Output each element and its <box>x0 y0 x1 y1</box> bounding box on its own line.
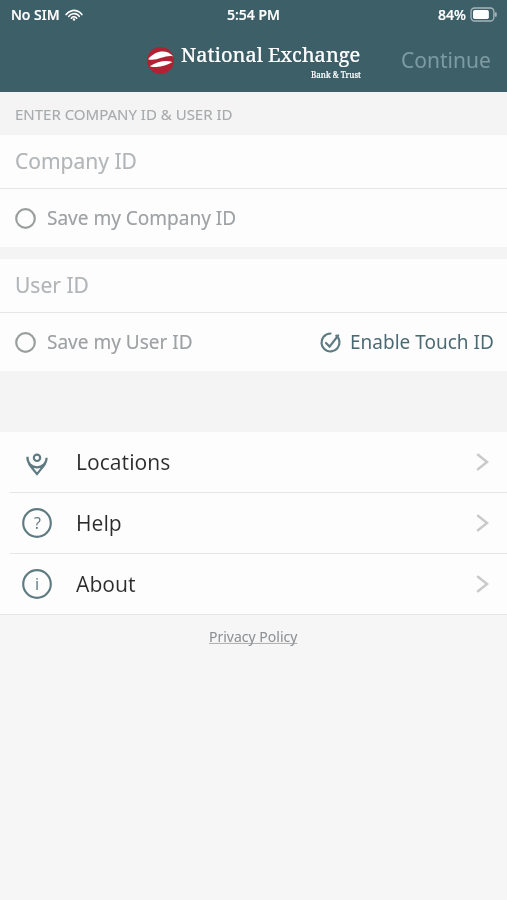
staticText: Continue <box>401 46 491 75</box>
staticText: National Exchange <box>181 41 361 68</box>
button[interactable]: User ID <box>0 259 507 312</box>
staticText: i <box>35 573 40 595</box>
staticText: Help <box>76 509 122 538</box>
staticText: Locations <box>76 448 171 477</box>
staticText: 84% <box>438 5 466 24</box>
button[interactable]: Locations <box>0 432 507 492</box>
button[interactable]: Save my User ID <box>0 321 205 363</box>
staticText: Privacy Policy <box>209 627 298 646</box>
staticText: Enable Touch ID <box>350 329 494 355</box>
button[interactable]: Save my Company ID <box>0 197 249 239</box>
staticText: No SIM <box>11 5 60 24</box>
staticText: 5:54 PM <box>227 5 280 24</box>
button[interactable]: Privacy Policy <box>203 621 304 652</box>
staticText: Save my User ID <box>47 329 193 355</box>
staticText: About <box>76 570 136 599</box>
button[interactable]: Company ID <box>0 135 507 188</box>
staticText: Company ID <box>15 147 137 176</box>
staticText: ENTER COMPANY ID & USER ID <box>15 104 233 124</box>
button[interactable]: ? <box>0 493 507 553</box>
staticText: Save my Company ID <box>47 205 237 231</box>
button[interactable]: Continue <box>385 34 507 87</box>
button[interactable]: Enable Touch ID <box>308 321 507 363</box>
staticText: Bank & Trust <box>311 69 361 80</box>
staticText: User ID <box>15 271 89 300</box>
button[interactable]: i <box>0 554 507 614</box>
staticText: ? <box>34 512 41 534</box>
